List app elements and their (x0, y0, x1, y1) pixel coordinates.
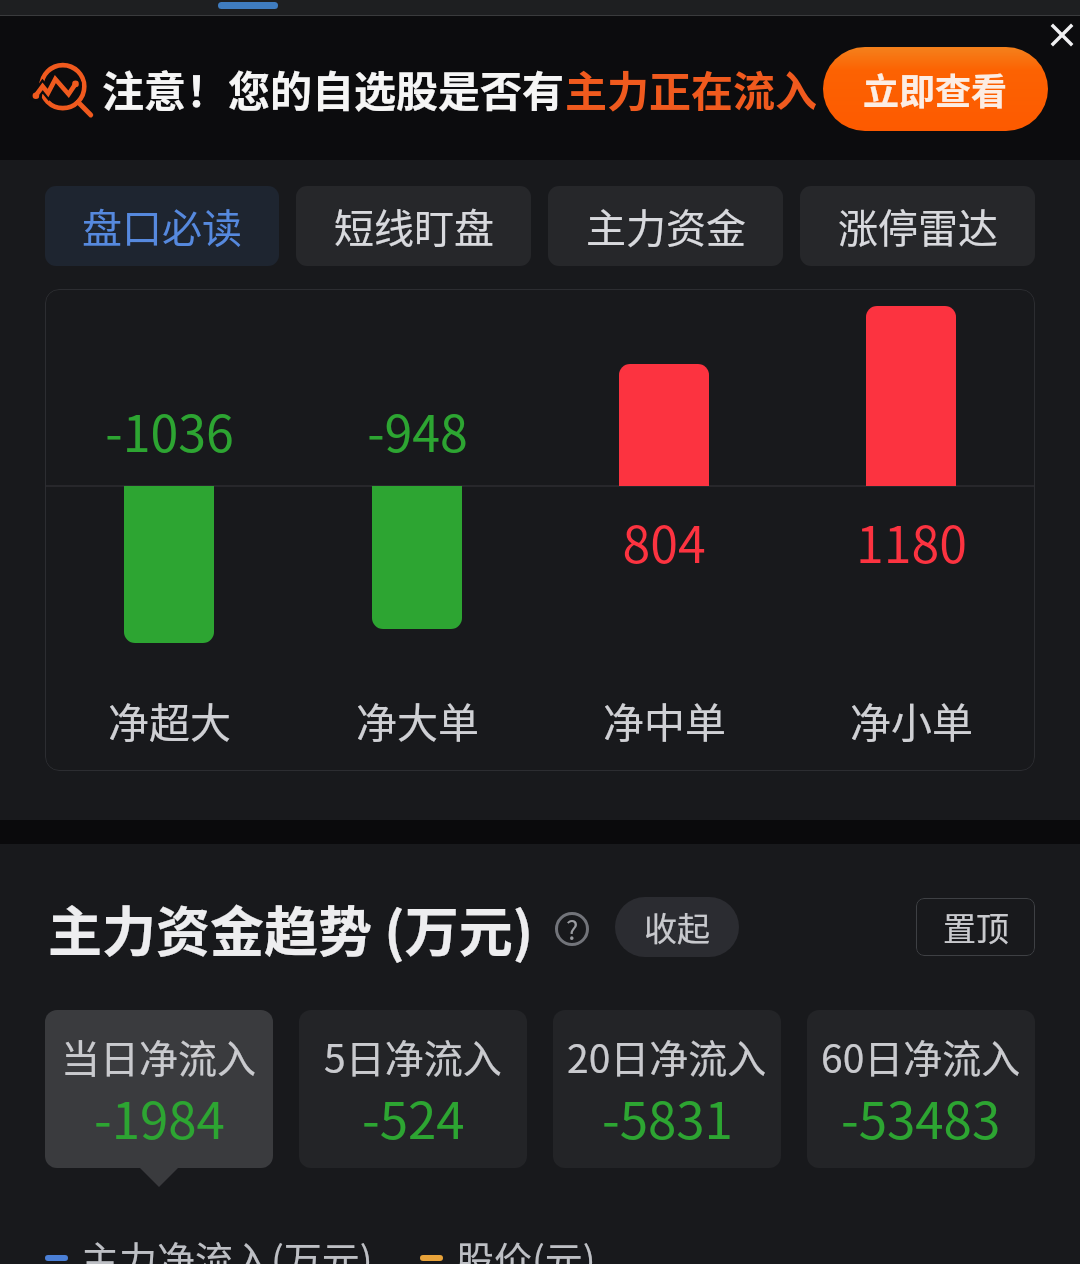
button[interactable]: 60日净流入 (807, 1010, 1035, 1168)
button[interactable]: 5日净流入 (299, 1010, 527, 1168)
staticText: -1984 (94, 1080, 225, 1154)
button[interactable]: 短线盯盘 (296, 186, 531, 266)
button[interactable]: 20日净流入 (553, 1010, 781, 1168)
staticText: 净小单 (850, 690, 973, 749)
staticText: 20日净流入 (567, 1028, 767, 1084)
staticText: 60日净流入 (821, 1028, 1021, 1084)
staticText: 主力资金 (586, 197, 746, 255)
staticText: 804 (622, 505, 706, 577)
staticText: 短线盯盘 (334, 197, 494, 255)
button[interactable]: 立即查看 (823, 47, 1048, 131)
staticText: -1036 (105, 394, 234, 466)
staticText: 股价(元) (456, 1230, 596, 1264)
staticText: 置顶 (943, 903, 1009, 951)
staticText: 净超大 (108, 690, 231, 749)
button[interactable]: 涨停雷达 (800, 186, 1035, 266)
button[interactable]: 资金流向图表 (45, 289, 1035, 771)
staticText: 净大单 (356, 690, 479, 749)
staticText: 主力正在流入 (565, 58, 818, 119)
staticText: 收起 (644, 903, 710, 951)
staticText: 当日净流入 (61, 1028, 257, 1084)
button[interactable]: 盘口必读 (45, 186, 279, 266)
button[interactable]: 当日净流入 (45, 1010, 273, 1168)
staticText: 主力净流入(万元) (81, 1230, 373, 1264)
staticText: -524 (362, 1080, 465, 1154)
staticText: -5831 (602, 1080, 733, 1154)
button[interactable]: 置顶 (916, 898, 1035, 956)
staticText: ? (566, 910, 579, 948)
staticText: 涨停雷达 (838, 197, 998, 255)
staticText: 注意！您的自选股是否有 (102, 58, 565, 119)
staticText: 净中单 (603, 690, 726, 749)
button[interactable]: Close (1036, 9, 1080, 61)
button[interactable]: 收起 (615, 897, 739, 957)
staticText: -53483 (841, 1080, 1001, 1154)
staticText: 主力资金趋势 (万元) (48, 889, 534, 967)
button[interactable]: Help (546, 903, 598, 955)
staticText: 立即查看 (863, 63, 1008, 115)
staticText: 盘口必读 (82, 197, 242, 255)
button[interactable]: 主力资金 (548, 186, 783, 266)
staticText: 5日净流入 (324, 1028, 502, 1084)
staticText: 1180 (856, 505, 967, 577)
staticText: -948 (367, 394, 468, 466)
